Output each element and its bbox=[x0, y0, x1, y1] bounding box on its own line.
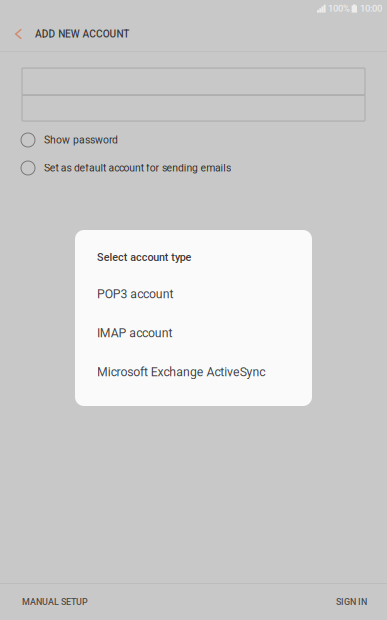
button[interactable]: Back bbox=[0, 19, 35, 48]
button[interactable]: IMAP account bbox=[75, 314, 312, 353]
staticText: SIGN IN bbox=[336, 597, 367, 607]
button[interactable]: Password bbox=[22, 95, 365, 121]
button[interactable]: Show password bbox=[0, 126, 387, 154]
button[interactable]: Microsoft Exchange ActiveSync bbox=[75, 353, 312, 392]
staticText: Set as default account for sending email… bbox=[44, 162, 231, 174]
staticText: Microsoft Exchange ActiveSync bbox=[97, 365, 265, 379]
button[interactable]: Email address bbox=[22, 68, 365, 95]
staticText: Show password bbox=[44, 134, 118, 146]
staticText: MANUAL SETUP bbox=[22, 597, 88, 607]
button[interactable]: MANUAL SETUP bbox=[0, 584, 88, 620]
button[interactable]: POP3 account bbox=[75, 275, 312, 314]
staticText: ADD NEW ACCOUNT bbox=[35, 28, 129, 40]
staticText: 10:00 bbox=[360, 3, 382, 14]
staticText: 100% bbox=[328, 3, 350, 14]
staticText: IMAP account bbox=[97, 326, 173, 340]
button[interactable]: Set as default account for sending email… bbox=[0, 154, 387, 182]
staticText: Select account type bbox=[97, 251, 191, 264]
staticText: POP3 account bbox=[97, 287, 174, 301]
button[interactable]: SIGN IN bbox=[336, 584, 387, 620]
